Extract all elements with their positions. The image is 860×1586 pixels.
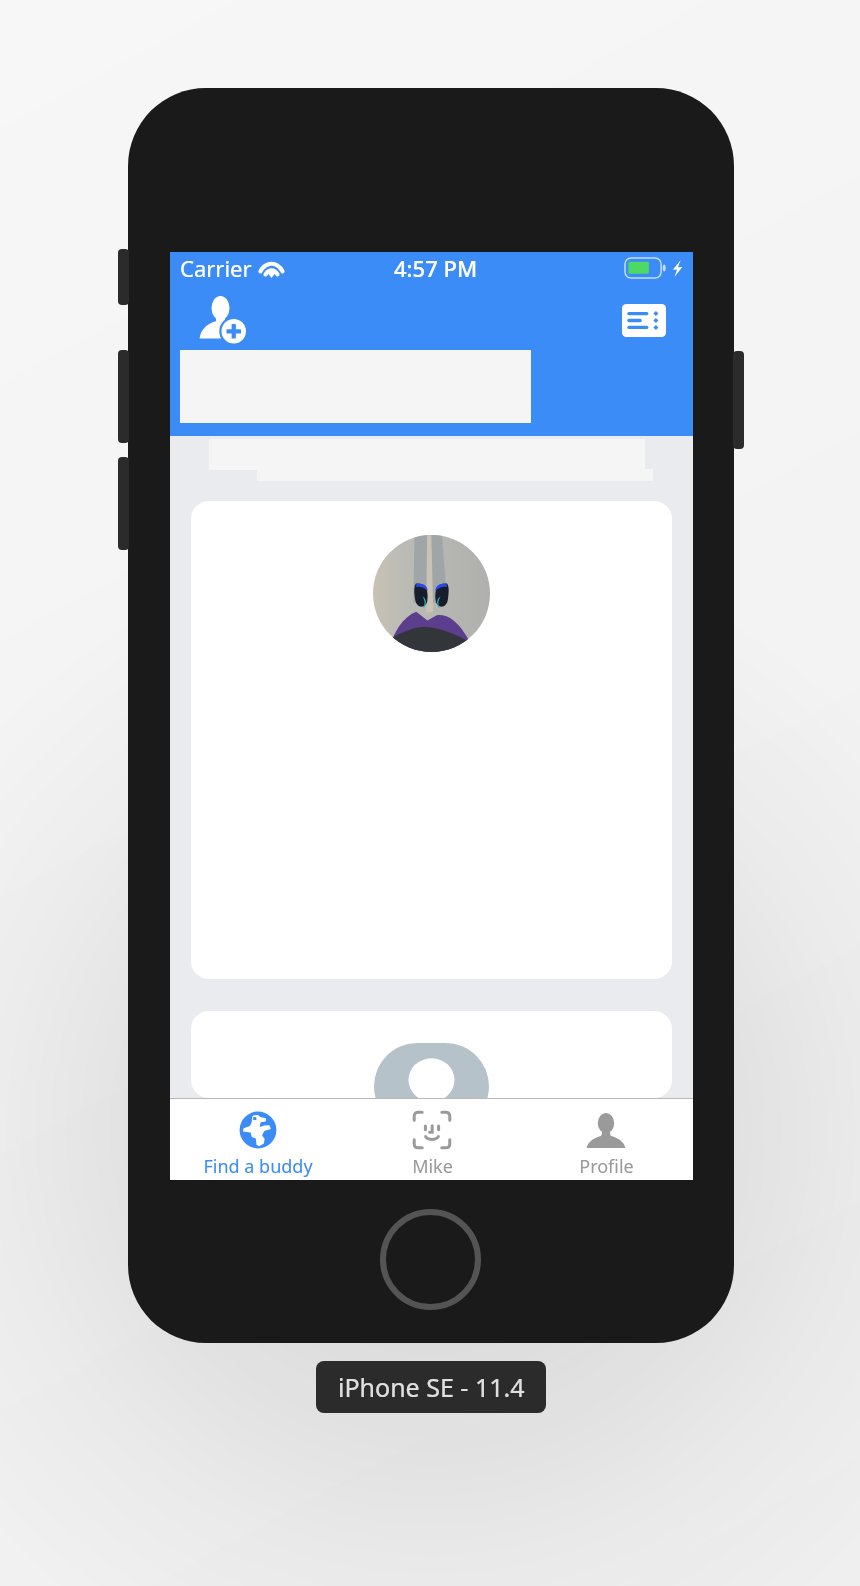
button[interactable] — [191, 1011, 672, 1098]
button[interactable]: Mike — [345, 1099, 519, 1180]
button[interactable]: Add buddy — [196, 293, 250, 347]
button[interactable]: List menu — [617, 293, 671, 347]
staticText: Carrier — [180, 253, 252, 283]
button[interactable]: Find a buddy — [170, 1099, 345, 1180]
button[interactable] — [191, 501, 672, 979]
button[interactable]: Profile — [519, 1099, 693, 1180]
staticText: Find a buddy — [203, 1154, 313, 1179]
staticText: 4:57 PM — [394, 253, 478, 283]
staticText: Profile — [579, 1154, 634, 1179]
staticText: Mike — [412, 1154, 453, 1179]
staticText: iPhone SE - 11.4 — [338, 1370, 525, 1404]
